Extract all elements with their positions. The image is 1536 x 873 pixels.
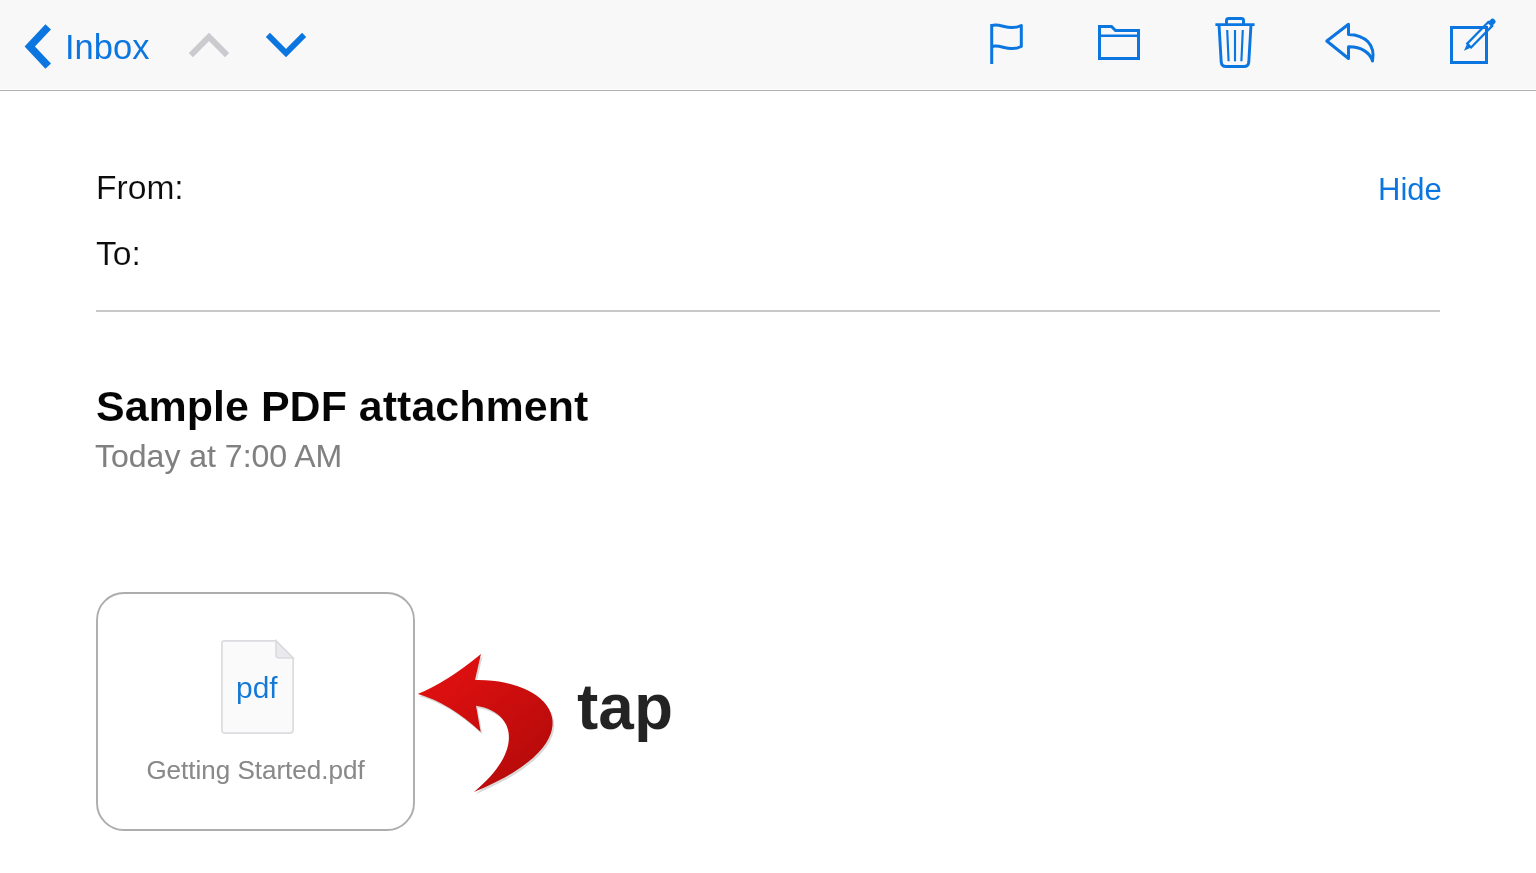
button[interactable]: Hide: [1360, 162, 1460, 217]
button[interactable]: Compose: [1431, 0, 1515, 83]
button[interactable]: Flag: [965, 2, 1048, 86]
staticText: Sample PDF attachment: [96, 382, 589, 430]
staticText: tap: [577, 671, 673, 743]
button[interactable]: Move to folder: [1077, 1, 1161, 84]
button[interactable]: Reply: [1308, 1, 1392, 84]
staticText: Hide: [1378, 172, 1442, 207]
button[interactable]: pdf: [96, 592, 415, 831]
staticText: From:: [96, 169, 184, 207]
staticText: To:: [96, 235, 141, 273]
staticText: Getting Started.pdf: [96, 755, 415, 784]
button[interactable]: Previous message: [168, 10, 250, 82]
staticText: pdf: [236, 671, 278, 705]
staticText: Inbox: [65, 28, 150, 67]
button[interactable]: Delete: [1193, 1, 1277, 84]
staticText: Today at 7:00 AM: [95, 438, 343, 474]
button[interactable]: Inbox: [12, 12, 164, 78]
button[interactable]: Next message: [245, 8, 327, 80]
